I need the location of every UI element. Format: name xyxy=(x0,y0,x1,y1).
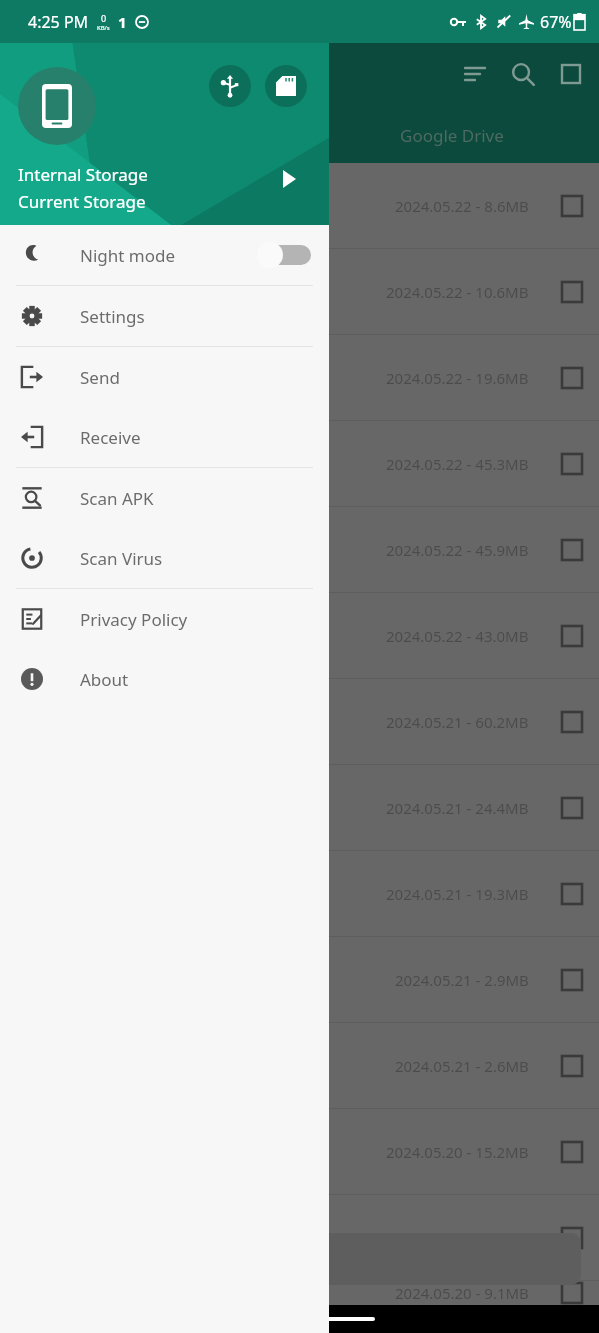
staticText: 2024.05.20 - 2.5MB xyxy=(395,1228,529,1248)
button[interactable]: Night mode xyxy=(0,225,329,285)
button[interactable]: Expand storage list xyxy=(275,165,303,193)
staticText: 2024.05.21 - 19.3MB xyxy=(386,884,529,904)
staticText: 2024.05.22 - 45.9MB xyxy=(386,540,529,560)
staticText: 67% xyxy=(540,11,572,33)
button[interactable]: Photos xyxy=(10,107,304,163)
staticText: Send xyxy=(80,366,120,389)
button[interactable]: 2024.05.21 - 19.3MB xyxy=(0,851,599,936)
staticText: Privacy Policy xyxy=(80,608,188,631)
button[interactable]: Send xyxy=(0,347,329,407)
button[interactable]: 2024.05.22 - 45.3MB xyxy=(0,421,599,506)
staticText: 2024.05.22 - 45.3MB xyxy=(386,454,529,474)
button[interactable]: Sort xyxy=(451,50,499,98)
button[interactable]: Scan APK xyxy=(0,468,329,528)
button[interactable]: 2024.05.22 - 19.6MB xyxy=(0,335,599,420)
button[interactable]: 2024.05.21 - 60.2MB xyxy=(0,679,599,764)
button[interactable]: About xyxy=(0,649,329,709)
staticText: 2024.05.21 - 2.6MB xyxy=(395,1056,529,1076)
button[interactable]: 2024.05.21 - 24.4MB xyxy=(0,765,599,850)
staticText: 2024.05.21 - 60.2MB xyxy=(386,712,529,732)
button[interactable]: Select all xyxy=(547,50,595,98)
button[interactable]: 2024.05.21 - 2.6MB xyxy=(0,1023,599,1108)
staticText: Scan Virus xyxy=(80,547,163,570)
button[interactable]: SD card xyxy=(265,65,307,107)
staticText: 2024.05.20 - 9.1MB xyxy=(395,1283,529,1303)
staticText: Settings xyxy=(80,305,145,328)
button[interactable]: Internal storage xyxy=(18,67,96,145)
staticText: 2024.05.21 - 2.9MB xyxy=(395,970,529,990)
staticText: Scan APK xyxy=(80,487,154,510)
staticText: Receive xyxy=(80,426,141,449)
button[interactable]: 2024.05.22 - 8.6MB xyxy=(0,163,599,248)
staticText: Night mode xyxy=(80,244,176,267)
staticText: About xyxy=(80,668,129,691)
button[interactable]: USB storage xyxy=(209,65,251,107)
staticText: 4:25 PM xyxy=(28,11,89,33)
button[interactable]: 2024.05.20 - 9.1MB xyxy=(0,1281,599,1305)
staticText: Internal Storage xyxy=(18,163,148,186)
button[interactable]: Receive xyxy=(0,407,329,467)
button[interactable]: Backup xyxy=(18,1233,581,1285)
button[interactable]: 2024.05.20 - 15.2MB xyxy=(0,1109,599,1194)
button[interactable]: 2024.05.20 - 2.5MB xyxy=(0,1195,599,1280)
staticText: 1 xyxy=(118,12,127,32)
button[interactable]: Scan Virus xyxy=(0,528,329,588)
staticText: 0 xyxy=(101,12,107,24)
button[interactable]: Privacy Policy xyxy=(0,589,329,649)
button[interactable]: 2024.05.22 - 10.6MB xyxy=(0,249,599,334)
staticText: 2024.05.22 - 43.0MB xyxy=(386,626,529,646)
staticText: Google Drive xyxy=(400,124,504,147)
button[interactable]: Settings xyxy=(0,286,329,346)
button[interactable]: Search xyxy=(499,50,547,98)
button[interactable]: 2024.05.21 - 2.9MB xyxy=(0,937,599,1022)
staticText: Current Storage xyxy=(18,190,146,213)
button[interactable]: 2024.05.22 - 45.9MB xyxy=(0,507,599,592)
staticText: KB/s xyxy=(97,24,110,32)
staticText: 2024.05.21 - 24.4MB xyxy=(386,798,529,818)
staticText: 2024.05.20 - 15.2MB xyxy=(386,1142,529,1162)
button[interactable]: 2024.05.22 - 43.0MB xyxy=(0,593,599,678)
button[interactable]: Google Drive xyxy=(304,107,599,163)
staticText: 2024.05.22 - 8.6MB xyxy=(395,196,529,216)
staticText: 2024.05.22 - 10.6MB xyxy=(386,282,529,302)
staticText: 2024.05.22 - 19.6MB xyxy=(386,368,529,388)
